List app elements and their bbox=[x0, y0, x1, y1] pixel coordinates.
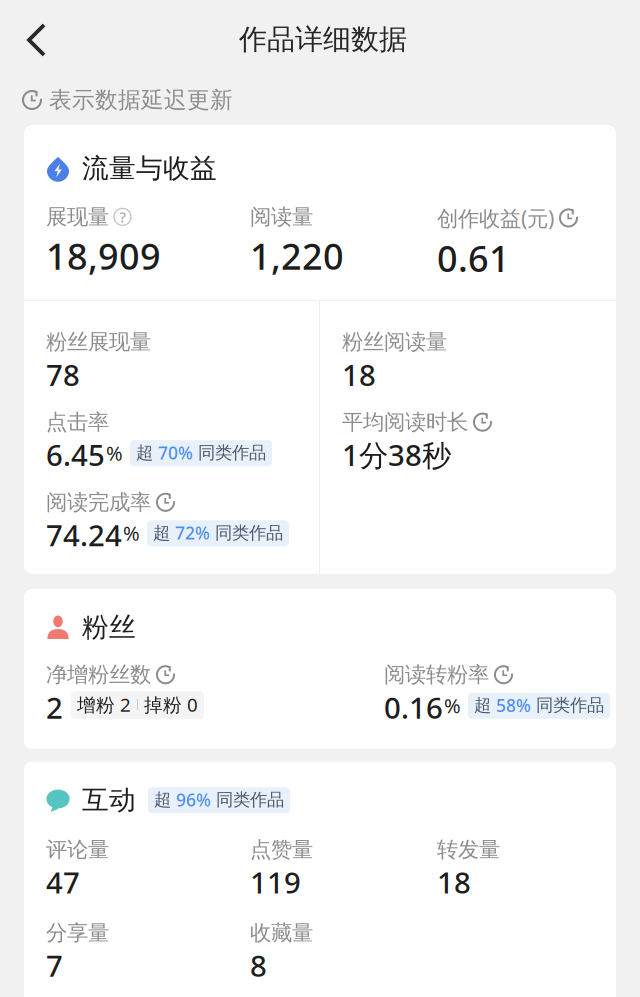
staticText: 96% bbox=[176, 788, 211, 811]
staticText: 0.61 bbox=[437, 234, 510, 282]
staticText: 分享量 bbox=[46, 920, 109, 946]
staticText: 粉丝展现量 bbox=[46, 329, 151, 355]
staticText: 58% bbox=[496, 694, 531, 717]
staticText: 评论量 bbox=[46, 837, 109, 863]
staticText: 7 bbox=[46, 946, 63, 985]
staticText: 70% bbox=[158, 441, 193, 464]
staticText: 点赞量 bbox=[250, 837, 313, 863]
staticText: 互动 bbox=[82, 784, 136, 817]
staticText: 18,909 bbox=[46, 232, 161, 280]
staticText: 超 bbox=[474, 695, 496, 716]
staticText: 超 bbox=[153, 522, 175, 543]
staticText: 表示数据延迟更新 bbox=[49, 86, 233, 114]
staticText: 超 bbox=[154, 789, 176, 810]
staticText: % bbox=[106, 440, 123, 466]
staticText: 1,220 bbox=[250, 232, 344, 280]
staticText: 0.16 bbox=[384, 688, 443, 727]
staticText: % bbox=[444, 692, 461, 719]
staticText: 72% bbox=[175, 521, 210, 544]
staticText: 2 bbox=[46, 688, 63, 727]
staticText: 阅读量 bbox=[250, 204, 313, 230]
staticText: 收藏量 bbox=[250, 920, 313, 946]
staticText: 粉丝 bbox=[82, 611, 136, 644]
staticText: 6.45 bbox=[46, 435, 105, 474]
staticText: 47 bbox=[46, 863, 80, 902]
staticText: 同类作品 bbox=[531, 695, 604, 716]
staticText: 超 bbox=[136, 442, 158, 463]
staticText: 粉丝阅读量 bbox=[342, 329, 447, 355]
staticText: 78 bbox=[46, 355, 80, 394]
staticText: 净增粉丝数 bbox=[46, 662, 151, 688]
staticText: 创作收益(元) bbox=[437, 204, 554, 232]
staticText: 1分38秒 bbox=[342, 435, 451, 474]
staticText: 展现量 bbox=[46, 204, 109, 230]
staticText: 作品详细数据 bbox=[239, 22, 407, 57]
button[interactable]: Back bbox=[0, 0, 68, 70]
staticText: 阅读转粉率 bbox=[384, 662, 489, 688]
staticText: 同类作品 bbox=[210, 522, 283, 543]
staticText: 119 bbox=[250, 863, 301, 902]
staticText: % bbox=[123, 520, 140, 546]
staticText: ? bbox=[119, 207, 125, 227]
staticText: 点击率 bbox=[46, 409, 109, 435]
staticText: 18 bbox=[437, 863, 471, 902]
staticText: 18 bbox=[342, 355, 376, 394]
staticText: 8 bbox=[250, 946, 267, 985]
staticText: 同类作品 bbox=[211, 789, 284, 810]
staticText: 转发量 bbox=[437, 837, 500, 863]
staticText: 流量与收益 bbox=[82, 152, 217, 185]
staticText: 增粉 2 bbox=[77, 692, 131, 717]
staticText: 平均阅读时长 bbox=[342, 409, 468, 435]
staticText: 同类作品 bbox=[193, 442, 266, 463]
staticText: 74.24 bbox=[46, 515, 122, 554]
staticText: 掉粉 0 bbox=[144, 692, 198, 717]
staticText: 阅读完成率 bbox=[46, 489, 151, 515]
